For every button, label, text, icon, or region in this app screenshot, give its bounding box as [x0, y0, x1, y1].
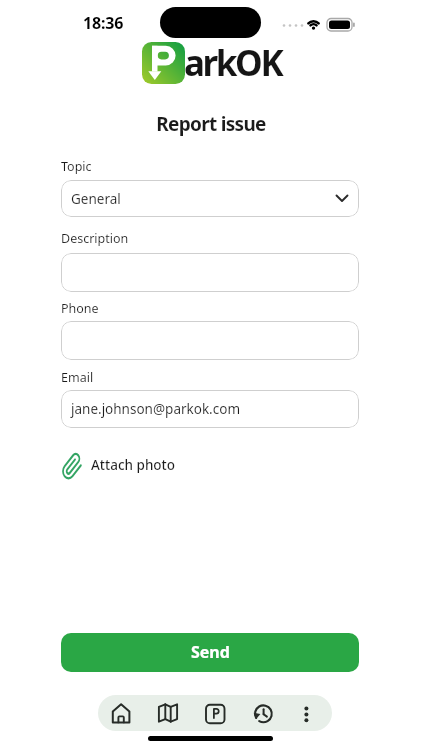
button[interactable]: General [61, 180, 359, 217]
button[interactable]: Send [61, 633, 359, 672]
staticText: jane.johnson@parkok.com [71, 400, 241, 418]
staticText: Topic [61, 158, 92, 175]
staticText: General [71, 190, 121, 208]
button[interactable] [98, 695, 144, 731]
staticText: Email [61, 369, 94, 386]
button[interactable] [144, 695, 191, 731]
staticText: Description [61, 230, 129, 247]
staticText: Report issue [0, 111, 422, 137]
button[interactable]: jane.johnson@parkok.com [61, 390, 359, 428]
staticText: Send [191, 641, 230, 663]
staticText: Attach photo [91, 456, 176, 474]
button[interactable] [285, 695, 332, 731]
button[interactable] [61, 253, 359, 292]
button[interactable] [191, 695, 238, 731]
button[interactable] [238, 695, 285, 731]
button[interactable] [61, 321, 359, 360]
staticText: arkOK [184, 39, 282, 87]
staticText: Phone [61, 300, 99, 317]
button[interactable]: Attach photo [60, 450, 176, 479]
staticText: 18:36 [83, 12, 124, 34]
